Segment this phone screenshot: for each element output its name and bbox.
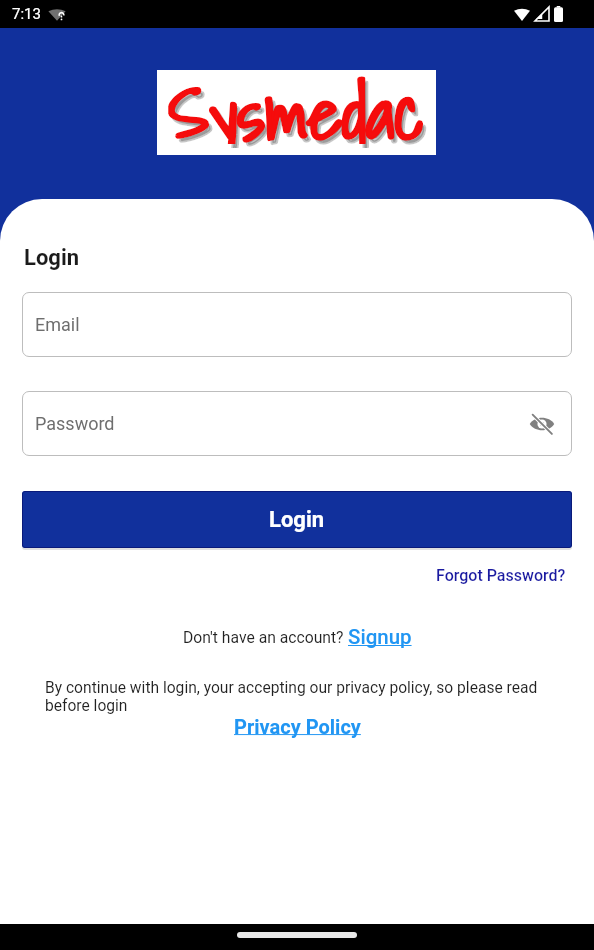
staticText: Don't have an account? bbox=[183, 628, 348, 646]
staticText: Sysmedac bbox=[172, 63, 428, 148]
staticText: Email bbox=[35, 314, 80, 335]
button[interactable]: Email bbox=[22, 292, 572, 357]
staticText: Signup bbox=[348, 625, 412, 649]
staticText: 7:13 bbox=[12, 5, 41, 23]
staticText: Forgot Password? bbox=[436, 566, 566, 585]
staticText: Login bbox=[24, 245, 80, 271]
staticText: Privacy Policy bbox=[234, 715, 361, 738]
button[interactable]: Show password bbox=[526, 408, 558, 440]
staticText: Sysmedac bbox=[172, 63, 428, 148]
button[interactable]: Login bbox=[22, 491, 572, 548]
button[interactable]: Password bbox=[22, 391, 572, 456]
button[interactable]: Signup bbox=[348, 625, 412, 649]
staticText: Login bbox=[269, 507, 325, 533]
staticText: Sysmedac bbox=[168, 59, 425, 144]
staticText: By continue with login, your accepting o… bbox=[45, 679, 554, 715]
staticText: Sysmedac bbox=[168, 59, 425, 144]
button[interactable]: Privacy Policy bbox=[234, 715, 361, 738]
button[interactable]: Forgot Password? bbox=[436, 566, 566, 585]
staticText: Password bbox=[35, 413, 115, 434]
